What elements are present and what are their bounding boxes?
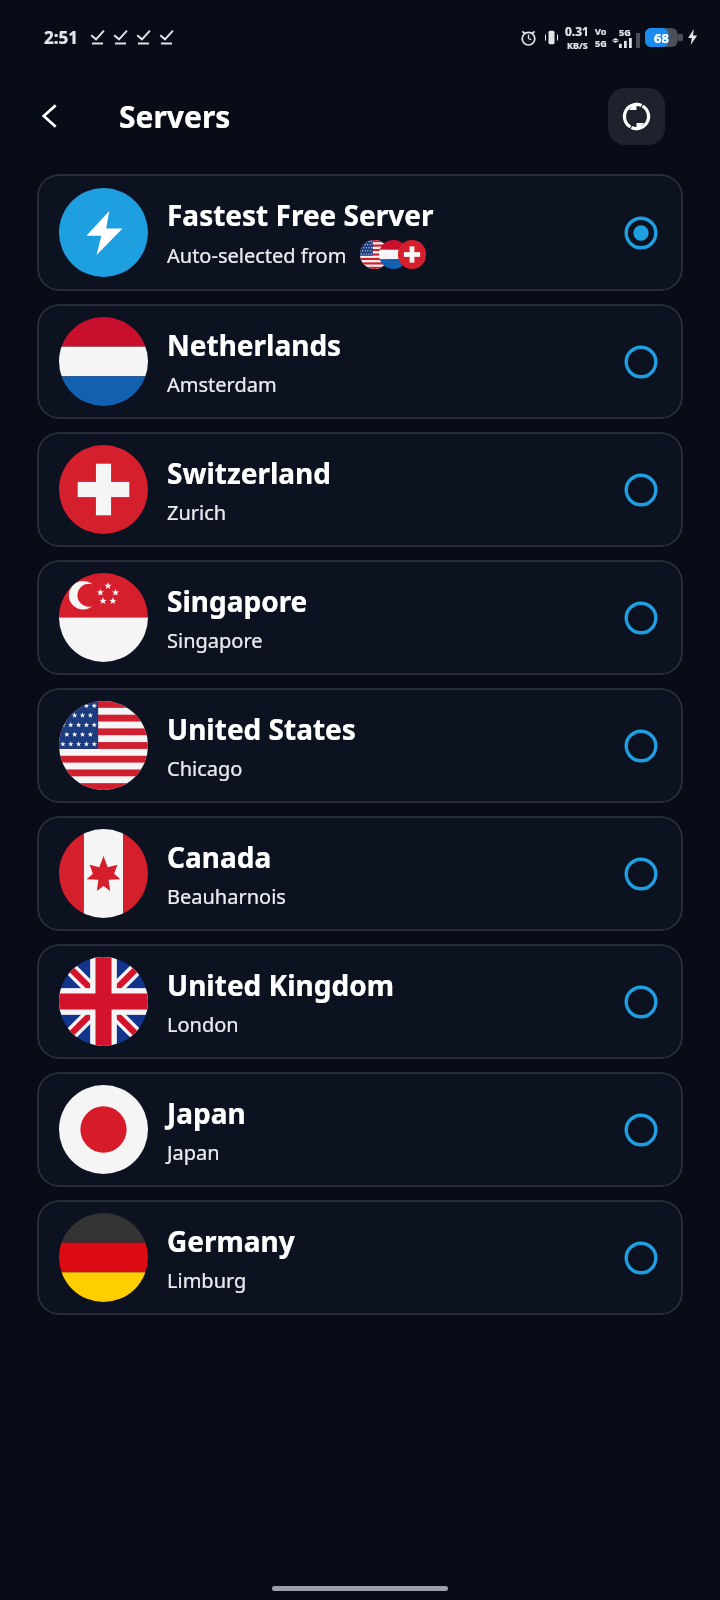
staticText: 5G bbox=[619, 26, 631, 38]
staticText: London bbox=[167, 1011, 239, 1038]
staticText: Netherlands bbox=[167, 326, 342, 364]
staticText: Auto-selected from bbox=[167, 242, 347, 269]
staticText: 0.31 bbox=[565, 23, 589, 39]
staticText: 68 bbox=[654, 29, 669, 47]
staticText: Vo bbox=[595, 25, 607, 37]
button[interactable]: United Kingdom bbox=[37, 944, 683, 1059]
staticText: Servers bbox=[119, 96, 231, 137]
button[interactable]: Canada bbox=[37, 816, 683, 931]
staticText: 5G bbox=[595, 37, 607, 49]
button[interactable]: Singapore bbox=[37, 560, 683, 675]
button[interactable]: Switzerland bbox=[37, 432, 683, 547]
staticText: Zurich bbox=[167, 499, 227, 526]
staticText: Germany bbox=[167, 1222, 295, 1260]
button[interactable]: United States bbox=[37, 688, 683, 803]
button[interactable]: Japan bbox=[37, 1072, 683, 1187]
staticText: Canada bbox=[167, 838, 272, 876]
button[interactable]: Germany bbox=[37, 1200, 683, 1315]
staticText: Japan bbox=[167, 1094, 246, 1132]
button[interactable]: Refresh bbox=[608, 88, 665, 145]
staticText: 2:51 bbox=[44, 26, 78, 49]
button[interactable]: Fastest Free Server bbox=[37, 174, 683, 291]
staticText: Chicago bbox=[167, 755, 243, 782]
staticText: Beauharnois bbox=[167, 883, 286, 910]
staticText: KB/S bbox=[567, 39, 588, 51]
staticText: Amsterdam bbox=[167, 371, 277, 398]
staticText: Switzerland bbox=[167, 454, 331, 492]
button[interactable]: Netherlands bbox=[37, 304, 683, 419]
staticText: United Kingdom bbox=[167, 966, 394, 1004]
staticText: Singapore bbox=[167, 627, 263, 654]
staticText: Singapore bbox=[167, 582, 308, 620]
staticText: Japan bbox=[167, 1139, 220, 1166]
staticText: Limburg bbox=[167, 1267, 247, 1294]
button[interactable]: Back bbox=[26, 92, 74, 140]
staticText: Fastest Free Server bbox=[167, 196, 434, 234]
staticText: United States bbox=[167, 710, 356, 748]
